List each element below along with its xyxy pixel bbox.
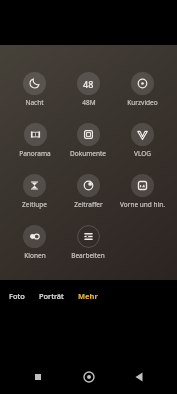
staticText: Foto: [9, 291, 25, 301]
button[interactable]: VLOG: [131, 123, 154, 158]
staticText: 48M: [82, 98, 96, 107]
button[interactable]: Klonen: [23, 225, 46, 260]
button[interactable]: Back: [126, 364, 152, 390]
staticText: Mehr: [78, 291, 98, 301]
staticText: Porträt: [39, 291, 64, 301]
button[interactable]: Panorama: [19, 123, 51, 158]
button[interactable]: Home: [76, 364, 102, 390]
button[interactable]: Kurzvideo: [127, 72, 158, 107]
button[interactable]: Recents: [25, 364, 51, 390]
staticText: Bearbeiten: [71, 251, 105, 260]
staticText: VLOG: [134, 149, 151, 158]
button[interactable]: 48: [77, 72, 100, 107]
button[interactable]: Bearbeiten: [71, 225, 105, 260]
button[interactable]: Zeitraffer: [74, 174, 103, 209]
staticText: Vorne und hin.: [120, 200, 165, 209]
button[interactable]: Porträt: [32, 285, 71, 307]
staticText: Kurzvideo: [127, 98, 158, 107]
staticText: Panorama: [19, 149, 51, 158]
button[interactable]: Zeitlupe: [22, 174, 47, 209]
staticText: 48: [83, 78, 94, 90]
staticText: Klonen: [24, 251, 46, 260]
button[interactable]: Mehr: [71, 285, 105, 307]
button[interactable]: Dokumente: [70, 123, 106, 158]
button[interactable]: Vorne und hin.: [120, 174, 165, 209]
button[interactable]: Foto: [2, 285, 32, 307]
staticText: Nacht: [25, 98, 44, 107]
staticText: Dokumente: [70, 149, 106, 158]
staticText: Zeitlupe: [22, 200, 47, 209]
staticText: Zeitraffer: [74, 200, 103, 209]
button[interactable]: Nacht: [23, 72, 46, 107]
